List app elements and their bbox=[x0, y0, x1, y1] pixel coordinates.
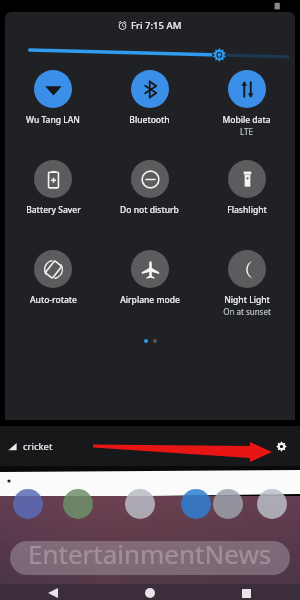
staticText: On at sunset bbox=[223, 306, 271, 317]
staticText: Fri 7:15 AM bbox=[131, 19, 182, 32]
staticText: Battery Saver bbox=[26, 204, 81, 216]
staticText: Mobile data bbox=[222, 114, 271, 126]
button[interactable]: Auto-rotate bbox=[5, 250, 101, 330]
staticText: Airplane mode bbox=[120, 294, 180, 306]
staticText: Night Light bbox=[224, 294, 270, 306]
staticText: Wu Tang LAN bbox=[26, 114, 80, 126]
button[interactable]: Airplane mode bbox=[101, 250, 198, 330]
button[interactable]: Flashlight bbox=[198, 160, 295, 240]
staticText: cricket bbox=[23, 440, 53, 453]
button[interactable]: Settings bbox=[270, 435, 292, 457]
staticText: Flashlight bbox=[227, 204, 267, 216]
staticText: Bluetooth bbox=[129, 114, 170, 126]
button[interactable]: Battery Saver bbox=[5, 160, 101, 240]
staticText: Do not disturb bbox=[120, 204, 179, 216]
staticText: EntertainmentNews bbox=[28, 536, 272, 571]
button[interactable]: Bluetooth bbox=[101, 70, 198, 150]
button[interactable]: Mobile data bbox=[198, 70, 295, 150]
staticText: LTE bbox=[240, 126, 253, 137]
button[interactable]: Night Light bbox=[198, 250, 295, 330]
staticText: Auto-rotate bbox=[30, 294, 77, 306]
button[interactable]: Do not disturb bbox=[101, 160, 198, 240]
button[interactable]: Wu Tang LAN bbox=[5, 70, 101, 150]
